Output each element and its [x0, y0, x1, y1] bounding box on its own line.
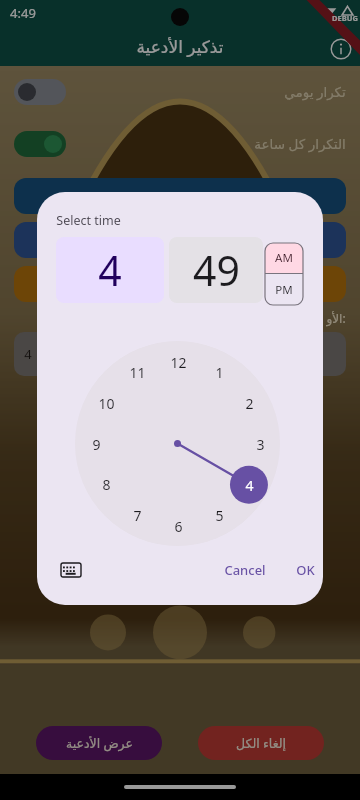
button[interactable]: التكرار كل ساعة [0, 118, 360, 170]
staticText: إلغاء الكل [236, 735, 286, 752]
button[interactable] [14, 266, 346, 302]
button[interactable]: AM [265, 243, 303, 273]
staticText: 12 [170, 353, 187, 372]
button[interactable]: Cancel [218, 551, 272, 589]
button[interactable]: 4 [14, 332, 346, 376]
button[interactable]: إلغاء الكل [198, 726, 324, 760]
staticText: OK [296, 561, 315, 579]
staticText: PM [275, 282, 293, 298]
staticText: Select time [56, 212, 121, 229]
staticText: 2 [245, 394, 254, 413]
staticText: DEBUG [332, 13, 358, 23]
staticText: 5 [215, 506, 224, 525]
button[interactable]: 4 [56, 237, 164, 303]
staticText: 4 [98, 242, 122, 298]
staticText: 10 [98, 394, 115, 413]
staticText: 8 [102, 475, 111, 494]
staticText: 4:49 [10, 4, 36, 22]
button[interactable]: Switch to text input [53, 552, 89, 588]
staticText: AM [275, 250, 293, 266]
staticText: 49 [193, 242, 240, 298]
button[interactable] [14, 178, 346, 214]
staticText: 9 [92, 435, 101, 454]
staticText: عرض الأدعية [66, 735, 133, 752]
staticText: 7 [133, 506, 142, 525]
button[interactable] [14, 222, 346, 258]
button[interactable]: PM [265, 274, 303, 305]
button[interactable]: Info [330, 38, 352, 60]
staticText: التكرار كل ساعة [254, 135, 346, 153]
staticText: 11 [129, 363, 146, 382]
button[interactable]: عرض الأدعية [36, 726, 162, 760]
button[interactable]: تكرار يومي [0, 66, 360, 118]
staticText: Cancel [224, 561, 266, 579]
staticText: 4 [245, 476, 254, 495]
button[interactable]: 49 [169, 237, 263, 303]
staticText: : [167, 249, 176, 291]
staticText: 1 [215, 363, 224, 382]
staticText: تكرار يومي [284, 83, 346, 101]
staticText: 3 [256, 435, 265, 454]
staticText: تذكير الأدعية [136, 35, 224, 58]
staticText: 6 [174, 517, 183, 536]
staticText: 4 [24, 345, 32, 363]
button[interactable] [75, 341, 280, 546]
staticText: الأو: [326, 310, 346, 326]
button[interactable]: OK [285, 551, 323, 589]
